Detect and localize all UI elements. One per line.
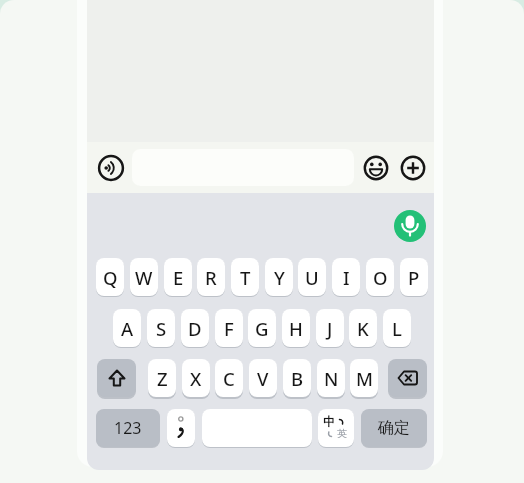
button[interactable]: A bbox=[113, 309, 141, 347]
button[interactable]: N bbox=[317, 359, 345, 397]
button[interactable]: T bbox=[231, 258, 259, 296]
button[interactable]: 中 bbox=[318, 409, 354, 447]
staticText: R bbox=[205, 265, 217, 290]
staticText: G bbox=[255, 316, 269, 341]
staticText: H bbox=[289, 316, 303, 341]
staticText: C bbox=[223, 366, 235, 391]
button[interactable]: O bbox=[366, 258, 394, 296]
button[interactable] bbox=[97, 359, 136, 397]
staticText: P bbox=[408, 265, 420, 290]
staticText: U bbox=[305, 265, 319, 290]
staticText: 123 bbox=[114, 417, 142, 439]
button[interactable]: G bbox=[248, 309, 276, 347]
button[interactable]: Y bbox=[265, 258, 293, 296]
button[interactable]: K bbox=[349, 309, 377, 347]
staticText: B bbox=[291, 366, 304, 391]
staticText: J bbox=[327, 316, 333, 341]
button[interactable]: X bbox=[182, 359, 210, 397]
button[interactable]: H bbox=[282, 309, 310, 347]
button[interactable]: C bbox=[215, 359, 243, 397]
staticText: W bbox=[135, 265, 153, 290]
staticText: I bbox=[343, 265, 350, 290]
staticText: Y bbox=[274, 265, 285, 290]
button[interactable]: I bbox=[332, 258, 360, 296]
staticText: T bbox=[240, 265, 251, 290]
button[interactable]: E bbox=[164, 258, 192, 296]
staticText: A bbox=[121, 316, 134, 341]
button[interactable] bbox=[400, 155, 426, 181]
button[interactable]: S bbox=[147, 309, 175, 347]
staticText: Z bbox=[157, 366, 168, 391]
staticText: E bbox=[173, 265, 184, 290]
button[interactable] bbox=[167, 409, 195, 447]
staticText: M bbox=[356, 366, 373, 391]
button[interactable] bbox=[394, 210, 426, 242]
button[interactable]: P bbox=[400, 258, 428, 296]
button[interactable] bbox=[98, 155, 124, 181]
button[interactable]: B bbox=[283, 359, 311, 397]
button[interactable]: M bbox=[350, 359, 378, 397]
staticText: 确定 bbox=[378, 418, 410, 438]
button[interactable]: R bbox=[197, 258, 225, 296]
staticText: K bbox=[357, 316, 369, 341]
button[interactable]: 确定 bbox=[361, 409, 427, 447]
button[interactable] bbox=[202, 409, 312, 447]
staticText: F bbox=[224, 316, 234, 341]
button[interactable]: D bbox=[181, 309, 209, 347]
staticText: 英 bbox=[337, 427, 347, 440]
staticText: D bbox=[188, 316, 202, 341]
button[interactable]: Z bbox=[148, 359, 176, 397]
button[interactable]: F bbox=[215, 309, 243, 347]
button[interactable] bbox=[363, 155, 389, 181]
staticText: L bbox=[392, 316, 402, 341]
staticText: O bbox=[373, 265, 388, 290]
staticText: N bbox=[324, 366, 339, 391]
button[interactable]: 123 bbox=[96, 409, 160, 447]
button[interactable]: U bbox=[298, 258, 326, 296]
button[interactable]: J bbox=[316, 309, 344, 347]
button[interactable]: Q bbox=[96, 258, 124, 296]
button[interactable]: W bbox=[130, 258, 158, 296]
button[interactable]: L bbox=[383, 309, 411, 347]
staticText: X bbox=[190, 366, 202, 391]
staticText: Q bbox=[103, 265, 118, 290]
button[interactable] bbox=[388, 359, 427, 397]
staticText: V bbox=[257, 366, 269, 391]
button[interactable]: V bbox=[249, 359, 277, 397]
staticText: 中 bbox=[323, 414, 335, 429]
staticText: S bbox=[156, 316, 167, 341]
